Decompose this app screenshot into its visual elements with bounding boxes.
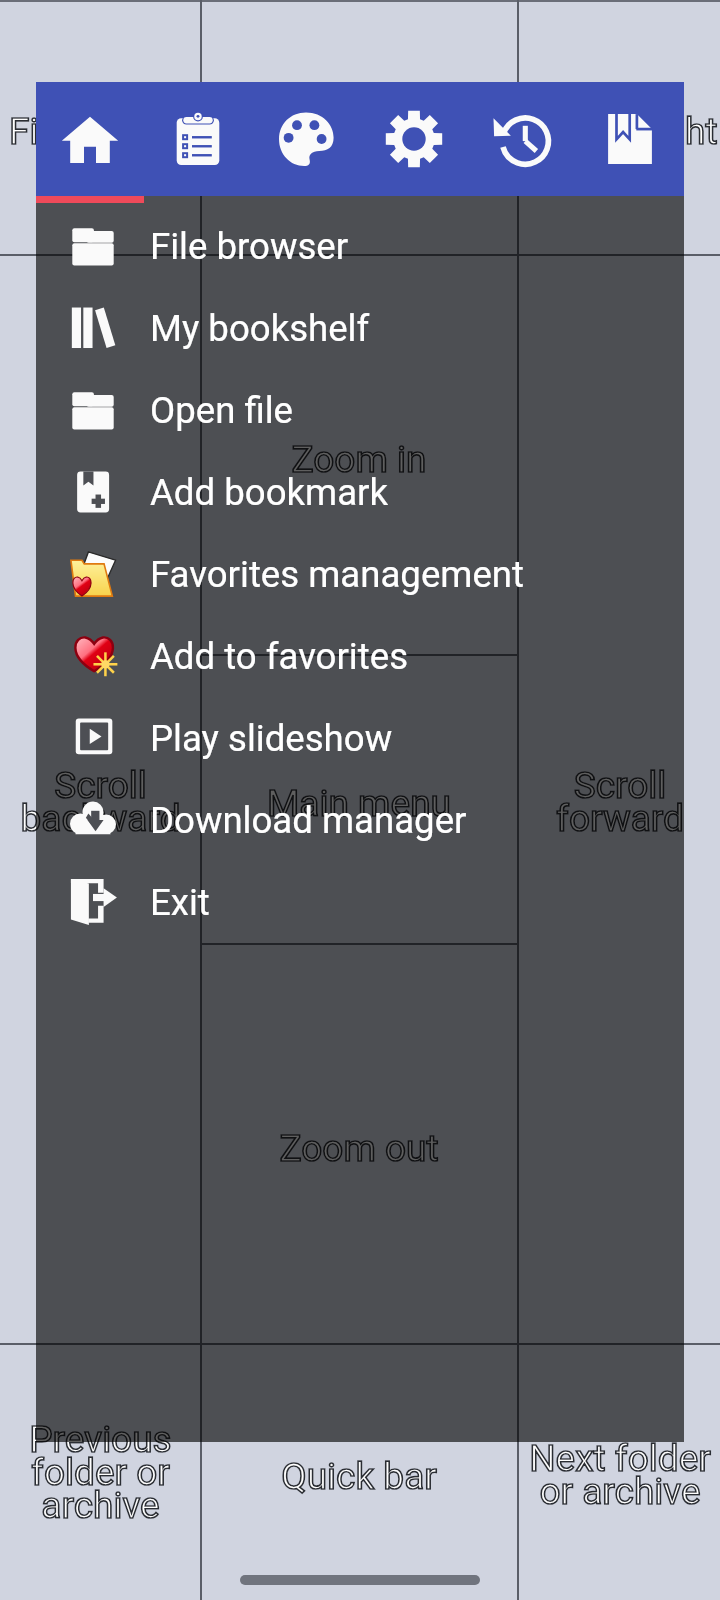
button[interactable]: Fit to width <box>0 0 200 254</box>
staticText: Open file <box>150 389 293 432</box>
staticText: Scroll forward <box>556 764 684 840</box>
staticText: Quick bar <box>281 1455 437 1498</box>
button[interactable]: My bookshelf <box>36 287 684 369</box>
button[interactable]: Play slideshow <box>36 697 684 779</box>
staticText: Scroll backward <box>20 764 181 840</box>
button[interactable]: Exit <box>36 861 684 943</box>
button[interactable]: Scroll backward <box>0 256 200 1343</box>
staticText: Quick bar <box>281 1455 437 1498</box>
staticText: Exit <box>150 881 210 924</box>
staticText: Fit to height <box>522 110 718 153</box>
button[interactable]: Bookmarks <box>576 82 684 196</box>
button[interactable]: Home <box>36 82 144 196</box>
button[interactable]: Settings <box>360 82 468 196</box>
button[interactable]: Quick bar <box>201 1345 517 1600</box>
button[interactable]: Zoom in <box>201 256 517 654</box>
staticText: Previous folder or archive <box>29 1418 172 1527</box>
staticText: Zoom out <box>279 1127 439 1170</box>
staticText: Zoom out <box>279 1127 439 1170</box>
staticText: Fit to width <box>9 110 192 153</box>
staticText: Next folder or archive <box>529 1437 711 1513</box>
staticText: Download manager <box>150 799 467 842</box>
staticText: Add bookmark <box>150 471 389 514</box>
staticText: Add to favorites <box>150 635 409 678</box>
staticText: Zoom in <box>291 438 427 481</box>
staticText: Scroll forward <box>556 764 684 840</box>
button[interactable]: Scroll forward <box>519 256 720 1343</box>
staticText: Fit to height <box>522 110 718 153</box>
button[interactable]: Themes <box>252 82 360 196</box>
staticText: Main menu <box>267 782 451 825</box>
button[interactable]: Library <box>144 82 252 196</box>
button[interactable]: Zoom out <box>201 945 517 1343</box>
button[interactable]: File browser <box>36 205 684 287</box>
button[interactable]: Add to favorites <box>36 615 684 697</box>
button[interactable]: Favorites management <box>36 533 684 615</box>
staticText: File browser <box>150 225 349 268</box>
button[interactable]: Next folder or archive <box>519 1345 720 1600</box>
button[interactable]: Open file <box>36 369 684 451</box>
staticText: Next folder or archive <box>529 1437 711 1513</box>
button[interactable]: Previous folder or archive <box>0 1345 200 1600</box>
button[interactable]: Fit to height <box>519 0 720 254</box>
staticText: My bookshelf <box>150 307 370 350</box>
staticText: Main menu <box>267 782 451 825</box>
staticText: Favorites management <box>150 553 524 596</box>
staticText: Previous folder or archive <box>29 1418 172 1527</box>
staticText: Play slideshow <box>150 717 393 760</box>
staticText: Scroll backward <box>20 764 181 840</box>
staticText: Fit to width <box>9 110 192 153</box>
staticText: Zoom in <box>291 438 427 481</box>
button[interactable]: Main menu <box>201 656 517 943</box>
button[interactable]: Add bookmark <box>36 451 684 533</box>
button[interactable]: Download manager <box>36 779 684 861</box>
button[interactable]: History <box>468 82 576 196</box>
